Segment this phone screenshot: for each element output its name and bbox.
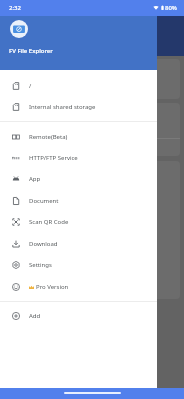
button[interactable]: Document (0, 190, 157, 212)
staticText: Document (29, 197, 59, 205)
button[interactable]: HTTP/FTP Service (0, 147, 157, 169)
staticText: Remote(Beta) (29, 133, 68, 141)
button[interactable]: Remote(Beta) (0, 126, 157, 148)
button[interactable]: Settings (0, 254, 157, 276)
button[interactable]: Download (0, 233, 157, 255)
staticText: Settings (29, 261, 52, 269)
button[interactable]: Scan QR Code (0, 211, 157, 233)
staticText: / (29, 82, 32, 90)
button[interactable]: Pro Version (0, 276, 157, 298)
staticText: Download (29, 240, 58, 248)
staticText: FV File Explorer (9, 47, 53, 55)
button[interactable]: Add (0, 305, 157, 327)
staticText: Add (29, 312, 41, 320)
button[interactable]: Internal shared storage (0, 96, 157, 118)
staticText: 2:32 (9, 4, 21, 12)
button[interactable]: / (0, 75, 157, 97)
staticText: App (29, 175, 41, 183)
button[interactable]: App (0, 168, 157, 190)
staticText: Internal shared storage (12, 44, 79, 52)
staticText: Scan QR Code (29, 218, 69, 226)
staticText: Internal shared storage (29, 103, 96, 111)
staticText: HTTP/FTP Service (29, 154, 78, 162)
staticText: 80% (165, 4, 177, 12)
staticText: Pro Version (36, 283, 69, 291)
